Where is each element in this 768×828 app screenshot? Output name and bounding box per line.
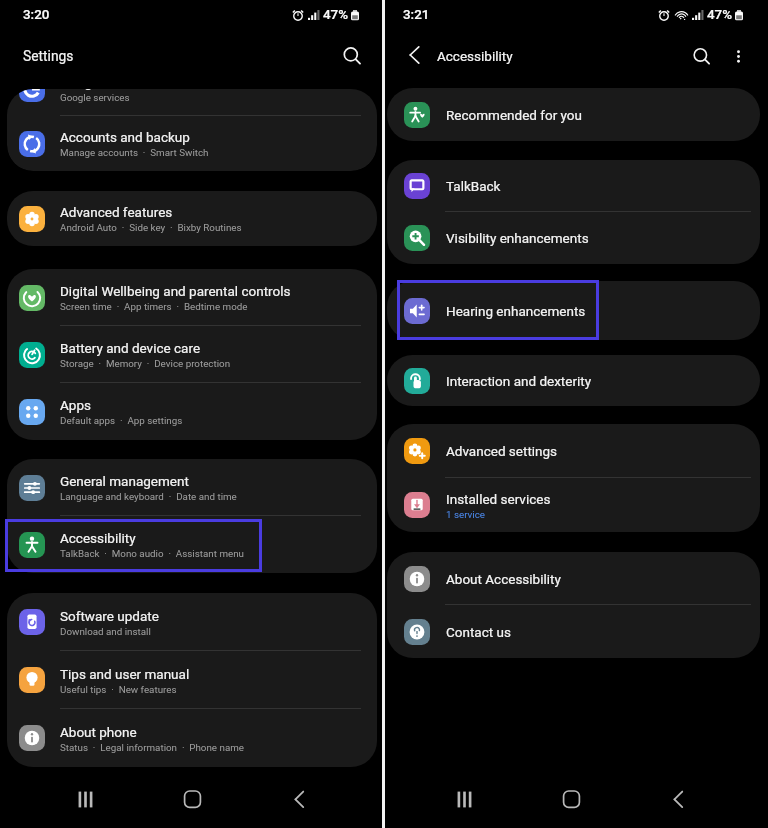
- button[interactable]: Contact us: [387, 605, 760, 658]
- button[interactable]: Recommended for you: [387, 88, 760, 141]
- button[interactable]: Home: [547, 775, 595, 823]
- staticText: Android Auto · Side key · Bixby Routines: [60, 222, 242, 233]
- button[interactable]: Digital Wellbeing and parental controls: [7, 269, 377, 326]
- button[interactable]: Search: [685, 40, 717, 72]
- staticText: Google services: [60, 92, 130, 103]
- staticText: About Accessibility: [446, 571, 561, 587]
- staticText: Manage accounts · Smart Switch: [60, 147, 209, 158]
- button[interactable]: Google: [7, 89, 377, 116]
- button[interactable]: Navigate up: [399, 39, 431, 71]
- staticText: Interaction and dexterity: [446, 373, 592, 389]
- staticText: Apps: [60, 397, 91, 413]
- button[interactable]: Recents: [61, 775, 109, 823]
- staticText: Software update: [60, 608, 159, 624]
- button[interactable]: More options: [722, 40, 754, 72]
- staticText: Battery and device care: [60, 340, 201, 356]
- button[interactable]: Recents: [440, 775, 488, 823]
- button[interactable]: Search: [336, 40, 368, 72]
- staticText: Accessibility: [60, 530, 136, 546]
- button[interactable]: About Accessibility: [387, 552, 760, 605]
- staticText: Accounts and backup: [60, 129, 190, 145]
- staticText: 47%: [707, 7, 733, 23]
- button[interactable]: Advanced settings: [387, 424, 760, 478]
- staticText: 3:20: [23, 7, 50, 23]
- staticText: Visibility enhancements: [446, 230, 589, 246]
- button[interactable]: Visibility enhancements: [387, 212, 760, 264]
- button[interactable]: Hearing enhancements: [387, 281, 760, 340]
- staticText: About phone: [60, 724, 137, 740]
- button[interactable]: Battery and device care: [7, 326, 377, 383]
- staticText: Installed services: [446, 491, 551, 507]
- staticText: Useful tips · New features: [60, 684, 177, 695]
- staticText: Default apps · App settings: [60, 415, 183, 426]
- staticText: Digital Wellbeing and parental controls: [60, 283, 291, 299]
- button[interactable]: About phone: [7, 709, 377, 767]
- staticText: Storage · Memory · Device protection: [60, 358, 231, 369]
- staticText: General management: [60, 473, 189, 489]
- button[interactable]: Back: [654, 775, 702, 823]
- button[interactable]: General management: [7, 459, 377, 516]
- staticText: 47%: [323, 7, 349, 23]
- button[interactable]: Apps: [7, 383, 377, 440]
- staticText: Google: [60, 89, 103, 90]
- staticText: Hearing enhancements: [446, 303, 586, 319]
- button[interactable]: Software update: [7, 593, 377, 651]
- staticText: TalkBack: [446, 178, 501, 194]
- staticText: Language and keyboard · Date and time: [60, 491, 237, 502]
- button[interactable]: TalkBack: [387, 160, 760, 212]
- button[interactable]: Home: [168, 775, 216, 823]
- staticText: Recommended for you: [446, 107, 583, 123]
- staticText: Tips and user manual: [60, 666, 190, 682]
- button[interactable]: Back: [275, 775, 323, 823]
- staticText: Screen time · App timers · Bedtime mode: [60, 301, 248, 312]
- staticText: Advanced features: [60, 204, 173, 220]
- staticText: Advanced settings: [446, 443, 558, 459]
- staticText: Download and install: [60, 626, 151, 637]
- staticText: Status · Legal information · Phone name: [60, 742, 245, 753]
- button[interactable]: Interaction and dexterity: [387, 355, 760, 406]
- button[interactable]: Advanced features: [7, 191, 377, 246]
- staticText: 3:21: [403, 7, 430, 23]
- staticText: 1 service: [446, 509, 486, 520]
- button[interactable]: Accessibility: [7, 516, 377, 573]
- staticText: Contact us: [446, 624, 511, 640]
- staticText: Settings: [23, 48, 74, 64]
- staticText: Accessibility: [437, 48, 513, 64]
- button[interactable]: Tips and user manual: [7, 651, 377, 709]
- button[interactable]: Accounts and backup: [7, 116, 377, 171]
- staticText: TalkBack · Mono audio · Assistant menu: [60, 548, 244, 559]
- button[interactable]: Installed services: [387, 478, 760, 532]
